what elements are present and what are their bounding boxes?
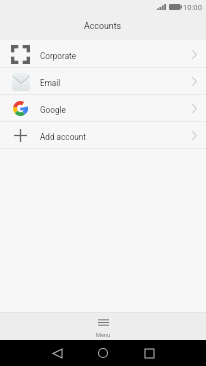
button[interactable]: Recents xyxy=(132,340,166,366)
staticText: 10:00 xyxy=(183,3,202,12)
button[interactable]: Google xyxy=(0,95,206,121)
button[interactable]: Home xyxy=(86,340,120,366)
button[interactable]: Email xyxy=(0,68,206,94)
staticText: Corporate xyxy=(40,51,77,61)
staticText: Menu xyxy=(96,332,111,338)
button[interactable]: Back xyxy=(40,340,74,366)
button[interactable]: Menu xyxy=(72,313,135,340)
button[interactable]: Add account xyxy=(0,122,206,148)
staticText: Email xyxy=(40,78,61,88)
staticText: Add account xyxy=(40,132,87,142)
staticText: Google xyxy=(40,105,66,115)
staticText: Accounts xyxy=(84,21,122,31)
button[interactable]: Corporate xyxy=(0,41,206,67)
